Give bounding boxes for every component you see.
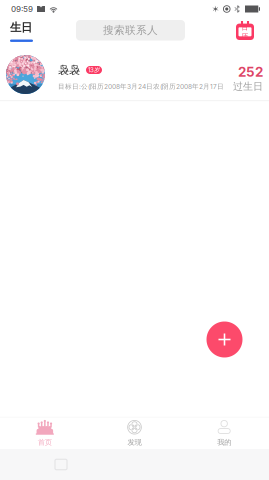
staticText: 搜索联系人 bbox=[103, 23, 158, 37]
button[interactable]: 发现 bbox=[90, 418, 179, 449]
button[interactable]: 首页 bbox=[0, 418, 90, 449]
staticText: 生日 bbox=[10, 20, 32, 35]
button[interactable]: 搜索联系人 bbox=[76, 20, 185, 40]
button[interactable]: 袅袅 bbox=[0, 55, 269, 100]
staticText: 日历 bbox=[241, 23, 248, 40]
button[interactable]: 添加生日 bbox=[206, 321, 242, 357]
staticText: 袅袅 bbox=[58, 63, 80, 77]
staticText: 首页 bbox=[38, 438, 52, 447]
button[interactable]: 我的 bbox=[179, 418, 269, 449]
staticText: 过生日 bbox=[233, 80, 263, 93]
staticText: 09:59 bbox=[11, 4, 33, 14]
staticText: 252 bbox=[238, 64, 263, 80]
staticText: 发现 bbox=[127, 438, 141, 447]
staticText: 我的 bbox=[217, 438, 231, 447]
staticText: 目标日:公(阳历2008年3月24日农(阴历2008年2月17日 bbox=[58, 82, 224, 91]
button[interactable]: Recents bbox=[50, 453, 72, 475]
button[interactable]: 生日 bbox=[10, 22, 33, 42]
staticText: 13岁 bbox=[88, 66, 100, 74]
button[interactable]: 日历 bbox=[236, 21, 254, 40]
